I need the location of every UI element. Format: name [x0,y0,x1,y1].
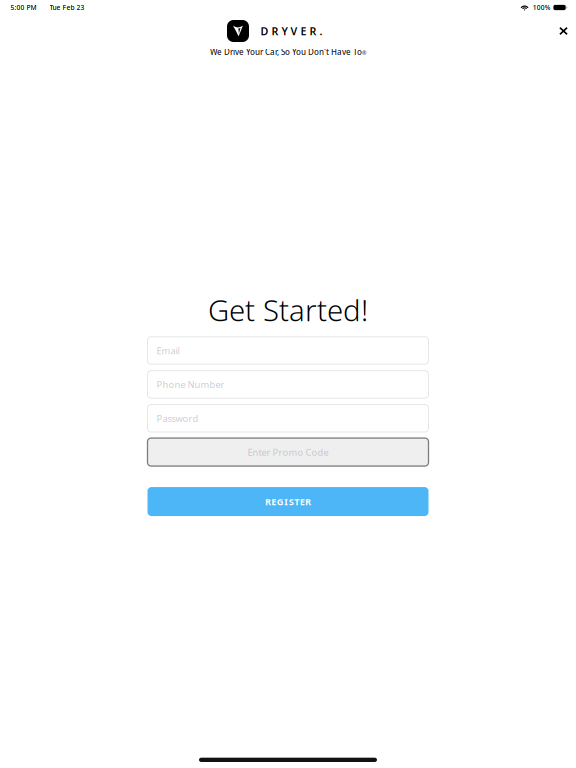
staticText: Tue Feb 23 [49,3,84,12]
staticText: Get Started! [208,290,368,329]
staticText: REGISTER [265,495,311,508]
staticText: Password [156,412,198,424]
staticText: D R Y V E R . [260,24,322,38]
staticText: 100% [533,3,551,12]
staticText: Enter Promo Code [247,446,328,458]
button[interactable]: REGISTER [147,487,428,516]
staticText: Email [156,344,179,357]
button[interactable]: Enter Promo Code [147,438,428,466]
staticText: 5:00 PM [10,3,36,12]
staticText: Phone Number [156,378,224,391]
button[interactable]: Close [550,18,576,44]
staticText: We Drive Your Car, So You Don't Have To® [210,46,366,57]
